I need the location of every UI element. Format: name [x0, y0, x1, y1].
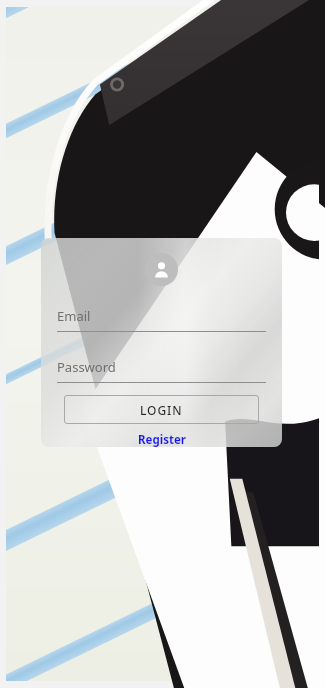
button[interactable]: Register [57, 432, 266, 447]
staticText: Password [57, 358, 116, 376]
button[interactable]: Email [57, 307, 266, 332]
other: Profile avatar [145, 253, 178, 286]
button[interactable]: Password [57, 358, 266, 383]
staticText: Email [57, 307, 91, 325]
button[interactable]: LOGIN [64, 395, 259, 424]
staticText: Register [138, 432, 186, 447]
staticText: LOGIN [140, 402, 183, 418]
